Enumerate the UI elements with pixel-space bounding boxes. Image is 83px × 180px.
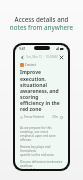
button[interactable]: Close bbox=[58, 54, 64, 60]
staticText: Discuss defensive tendencies and how to … bbox=[20, 160, 63, 169]
button[interactable]: Trevor Herbert bbox=[20, 115, 44, 119]
staticText: notes from anywhere bbox=[0, 23, 83, 31]
staticText: As we prepare for this matchup, our most… bbox=[20, 126, 63, 142]
button[interactable]: Context bbox=[20, 63, 36, 67]
staticText: Review key plays and formations specific… bbox=[20, 145, 63, 157]
staticText: Access details and bbox=[0, 15, 83, 23]
button[interactable]: Back bbox=[19, 54, 25, 60]
staticText: Tue, Mar 12 · 10:30AM bbox=[26, 55, 58, 59]
button[interactable]: Duration bbox=[52, 115, 63, 119]
staticText: Context bbox=[25, 63, 36, 67]
staticText: 9:41 bbox=[19, 47, 26, 51]
staticText: Improve execution, situational awareness… bbox=[20, 69, 63, 112]
staticText: Trevor Herbert bbox=[24, 115, 44, 119]
staticText: 37m bbox=[52, 115, 59, 119]
